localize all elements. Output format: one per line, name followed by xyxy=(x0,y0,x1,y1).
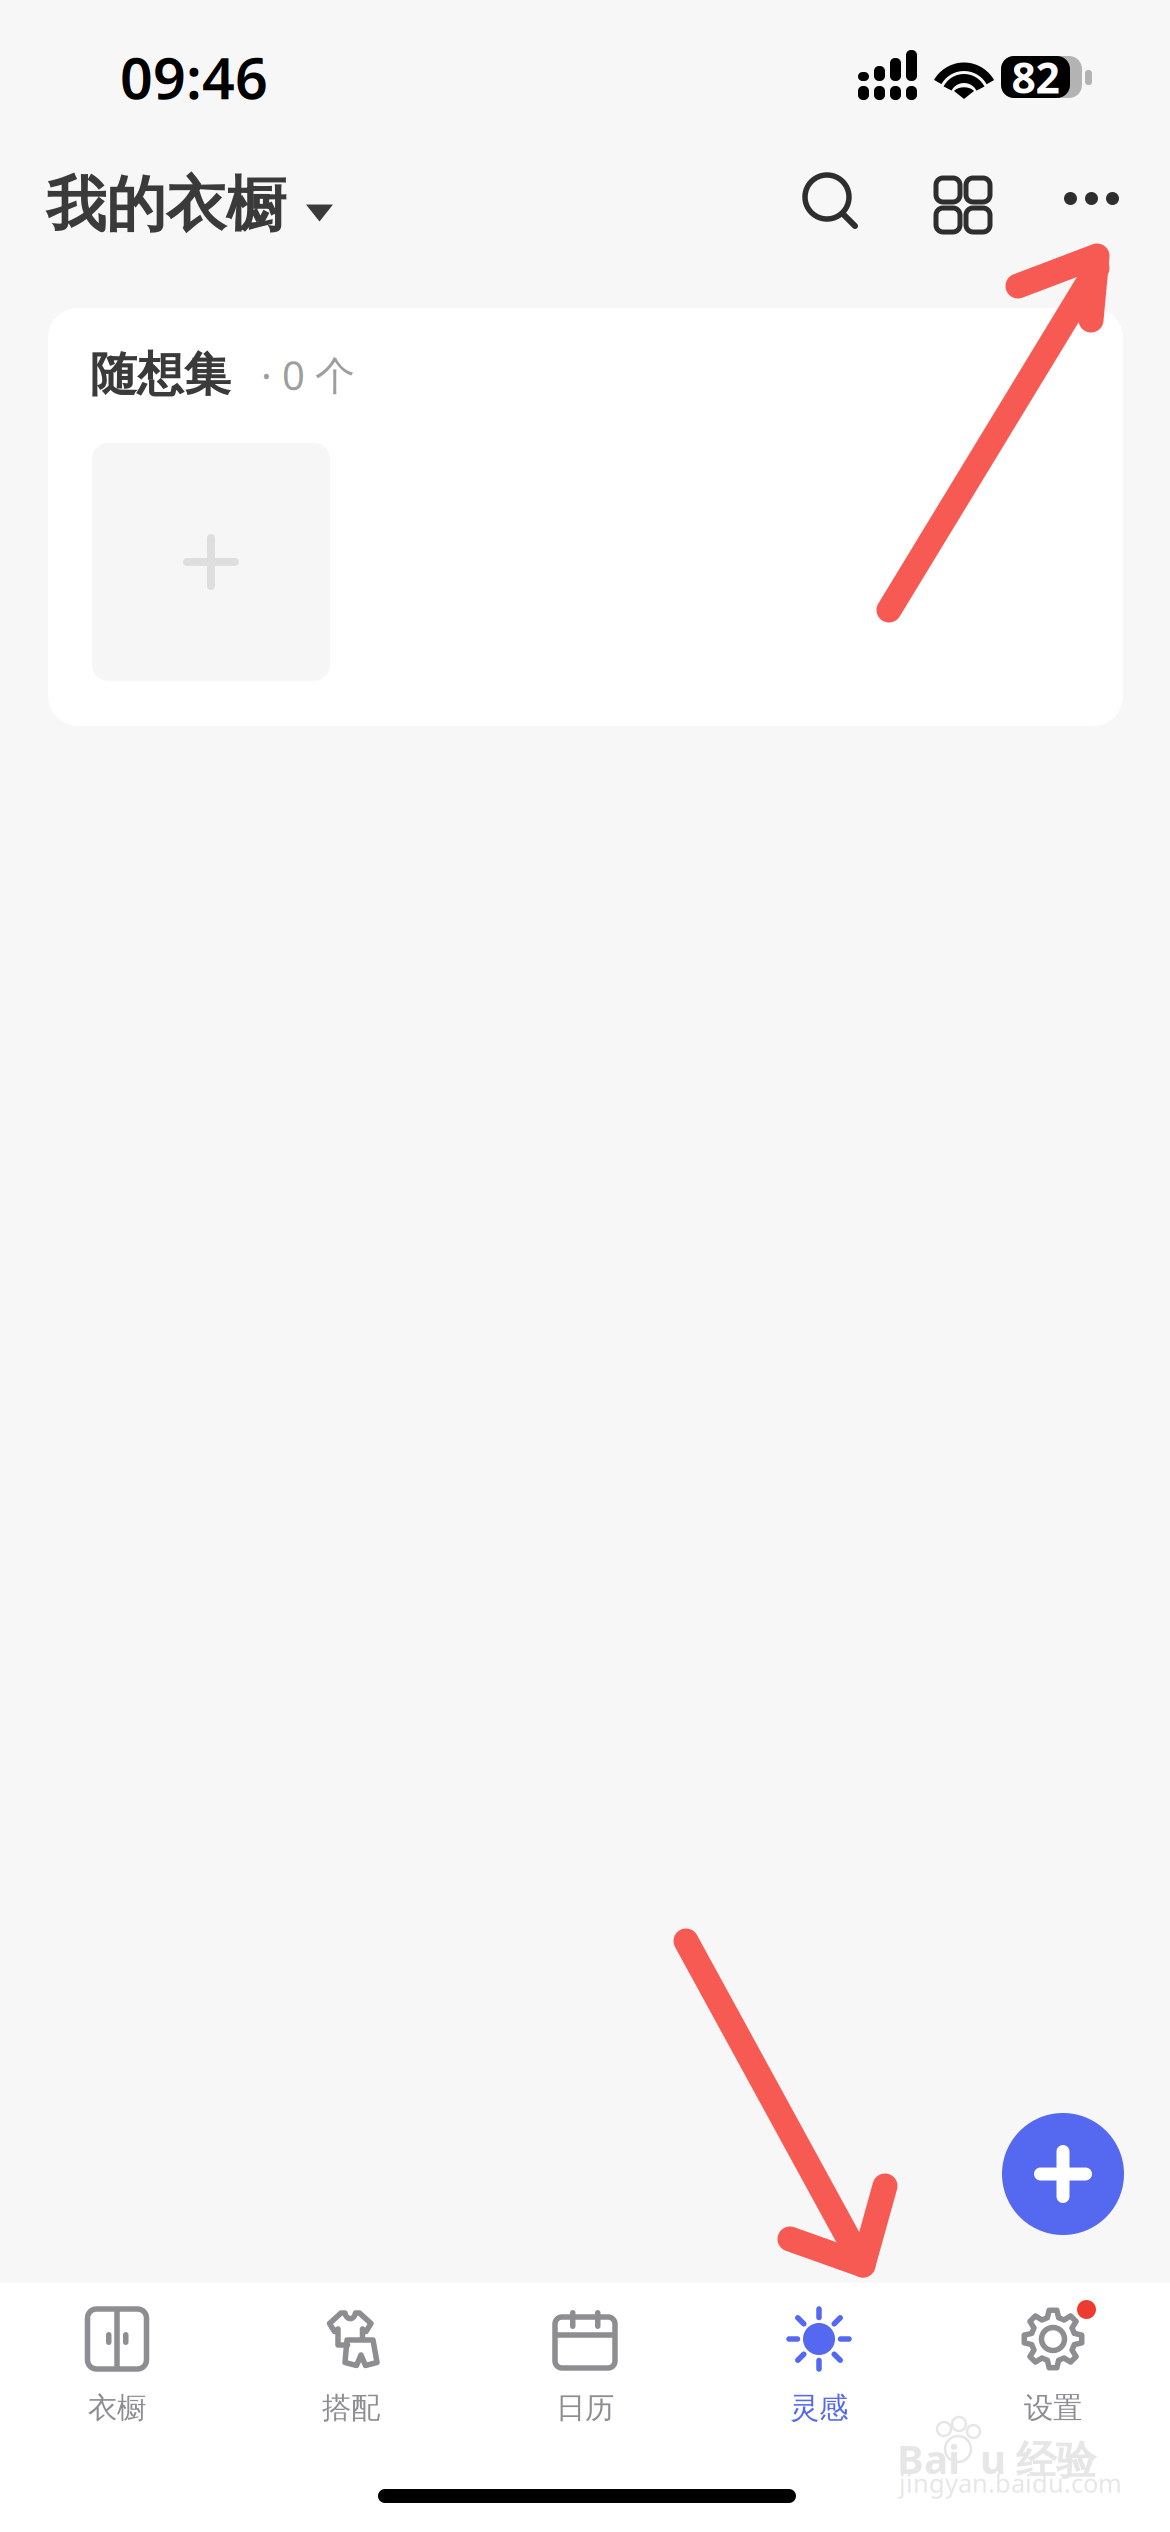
staticText: 衣橱 xyxy=(88,2390,146,2426)
staticText: 设置 xyxy=(1024,2390,1082,2426)
staticText: 82 xyxy=(1011,49,1059,105)
button[interactable]: 我的衣橱 xyxy=(46,146,466,264)
button[interactable]: Search xyxy=(771,147,885,261)
button[interactable]: 日历 xyxy=(468,2283,702,2473)
staticText: · 0 个 xyxy=(231,348,355,401)
button[interactable]: More options xyxy=(1034,146,1148,260)
button[interactable]: Grid view xyxy=(905,150,1019,264)
staticText: 09:46 xyxy=(120,39,268,115)
staticText: 日历 xyxy=(556,2390,614,2426)
staticText: jingyan.baidu.com xyxy=(899,2466,1122,2500)
staticText: Bai u 经验 xyxy=(897,2432,1096,2485)
button[interactable]: 衣橱 xyxy=(0,2283,234,2473)
staticText: 我的衣橱 xyxy=(46,168,286,242)
staticText: 灵感 xyxy=(790,2390,848,2426)
staticText: 随想集 xyxy=(90,346,231,403)
button[interactable]: Add xyxy=(1002,2113,1124,2235)
staticText: 搭配 xyxy=(322,2390,380,2426)
button[interactable]: 设置 xyxy=(936,2283,1170,2473)
button[interactable]: 灵感 xyxy=(702,2283,936,2473)
button[interactable]: 搭配 xyxy=(234,2283,468,2473)
